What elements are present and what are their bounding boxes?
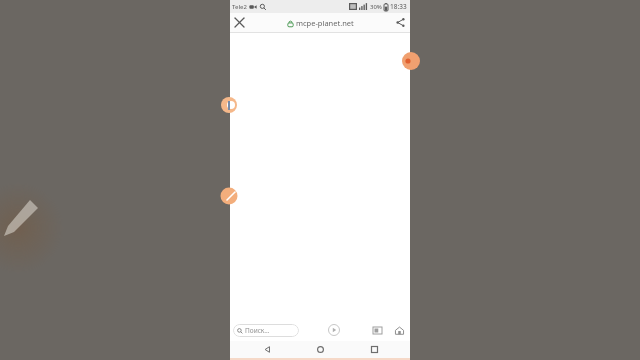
button[interactable]: Поиск...	[233, 324, 299, 337]
staticText: 18:33	[390, 2, 407, 11]
staticText: Поиск...	[245, 326, 270, 335]
button[interactable]: mcpe-planet.net	[249, 18, 391, 28]
staticText: Tele2	[232, 3, 247, 11]
button[interactable]: Home	[391, 322, 407, 338]
button[interactable]: Recents	[357, 341, 391, 358]
button[interactable]: Close	[230, 13, 249, 32]
staticText: mcpe-planet.net	[296, 18, 354, 28]
button[interactable]: Tabs	[369, 322, 385, 338]
button[interactable]: Back	[250, 341, 284, 358]
button[interactable]: Share	[391, 13, 410, 32]
button[interactable]: Home	[303, 341, 337, 358]
button[interactable]: Play	[326, 322, 342, 338]
staticText: 30%	[370, 3, 382, 11]
